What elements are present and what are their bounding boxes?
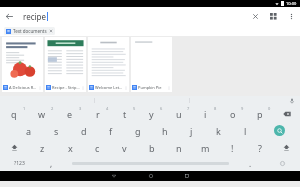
button[interactable]: w [28, 105, 56, 122]
button[interactable]: Recipe - Striped [45, 37, 86, 92]
button[interactable]: Document options [37, 85, 42, 90]
button[interactable]: x [56, 139, 84, 156]
staticText: 9 [241, 106, 244, 111]
staticText: i [204, 108, 207, 120]
staticText: f [109, 125, 113, 137]
button[interactable]: Emoji [264, 156, 300, 171]
button[interactable]: Grid view [264, 7, 282, 25]
staticText: x [68, 142, 73, 154]
staticText: s [54, 125, 59, 137]
button[interactable]: s [43, 122, 70, 139]
button[interactable]: Search [259, 122, 300, 139]
staticText: 5 [133, 106, 136, 111]
staticText: Recipe - Striped [52, 85, 80, 90]
button[interactable]: Pumpkin Pie [131, 37, 172, 92]
button[interactable]: a [15, 122, 43, 139]
staticText: ! [231, 142, 234, 154]
staticText: w [38, 108, 46, 120]
staticText: 10:00 [286, 1, 297, 6]
button[interactable]: Back [109, 171, 119, 181]
button[interactable]: y [138, 105, 165, 122]
button[interactable]: Backspace [273, 105, 300, 122]
staticText: , [50, 158, 53, 169]
staticText: q [11, 108, 17, 120]
staticText: g [135, 125, 141, 137]
button[interactable]: t [111, 105, 138, 122]
button[interactable]: Space [65, 156, 236, 171]
button[interactable]: , [38, 156, 65, 171]
staticText: 4 [106, 106, 109, 111]
button[interactable]: Shift [0, 139, 28, 156]
button[interactable]: ! [219, 139, 246, 156]
staticText: recipe [23, 11, 46, 22]
button[interactable]: b [138, 139, 165, 156]
button[interactable]: o [219, 105, 246, 122]
button[interactable]: q [0, 105, 28, 122]
staticText: 2 [51, 106, 54, 111]
staticText: e [67, 108, 73, 120]
staticText: 6 [160, 106, 163, 111]
staticText: r [96, 108, 100, 120]
button[interactable]: z [28, 139, 56, 156]
staticText: a [26, 125, 32, 137]
staticText: c [95, 142, 100, 154]
staticText: 3 [79, 106, 82, 111]
staticText: z [40, 142, 45, 154]
staticText: d [81, 125, 87, 137]
staticText: . [249, 158, 252, 169]
button[interactable]: m [192, 139, 219, 156]
staticText: Pumpkin Pie [138, 85, 166, 90]
staticText: y [149, 108, 154, 120]
button[interactable]: v [111, 139, 138, 156]
staticText: l [244, 125, 247, 137]
button[interactable]: n [165, 139, 192, 156]
button[interactable]: i [192, 105, 219, 122]
staticText: Text documents [13, 28, 47, 34]
staticText: 0 [268, 106, 271, 111]
staticText: n [176, 142, 182, 154]
staticText: ? [258, 142, 262, 154]
button[interactable]: Document options [80, 85, 85, 90]
button[interactable]: Text documents [4, 27, 55, 35]
button[interactable]: k [205, 122, 232, 139]
staticText: 8 [214, 106, 217, 111]
button[interactable]: d [70, 122, 97, 139]
button[interactable]: Document options [166, 85, 171, 90]
button[interactable]: . [236, 156, 264, 171]
button[interactable]: More options [282, 7, 300, 25]
button[interactable]: Voice input [284, 96, 300, 105]
button[interactable]: h [151, 122, 178, 139]
staticText: k [216, 125, 221, 137]
button[interactable]: e [56, 105, 84, 122]
button[interactable]: Clear search [246, 7, 264, 25]
button[interactable]: l [232, 122, 259, 139]
staticText: Welcome Letter [95, 85, 123, 90]
button[interactable]: Recent apps [182, 171, 192, 181]
staticText: m [201, 142, 210, 154]
button[interactable]: Home [146, 171, 156, 181]
button[interactable]: Back [0, 7, 18, 25]
staticText: b [149, 142, 155, 154]
staticText: t [123, 108, 127, 120]
staticText: ?123 [14, 160, 25, 167]
staticText: h [162, 125, 168, 137]
button[interactable]: u [165, 105, 192, 122]
staticText: u [176, 108, 182, 120]
button[interactable]: Welcome Letter [88, 37, 129, 92]
button[interactable]: A Delicious Recipe [2, 37, 43, 92]
button[interactable]: g [124, 122, 151, 139]
button[interactable]: Shift [273, 139, 300, 156]
button[interactable]: c [84, 139, 111, 156]
staticText: 1 [23, 106, 26, 111]
button[interactable]: Document options [123, 85, 128, 90]
button[interactable]: ? [246, 139, 273, 156]
button[interactable]: r [84, 105, 111, 122]
button[interactable]: ?123 [0, 156, 38, 171]
button[interactable]: p [246, 105, 273, 122]
button[interactable]: f [97, 122, 124, 139]
button[interactable]: j [178, 122, 205, 139]
staticText: A Delicious Recipe [9, 85, 37, 90]
